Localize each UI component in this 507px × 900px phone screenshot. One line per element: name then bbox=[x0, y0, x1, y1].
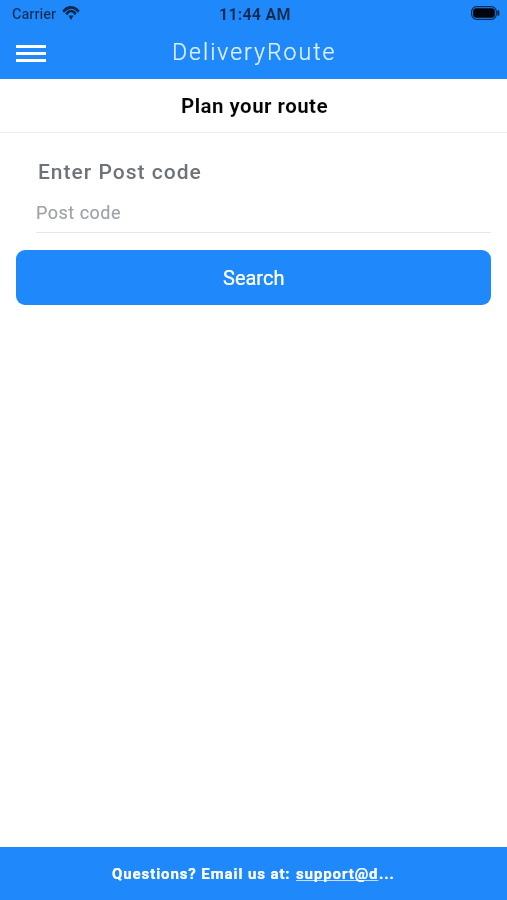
button[interactable]: Questions? Email us at: bbox=[0, 847, 507, 900]
staticText: Enter Post code bbox=[38, 160, 202, 185]
staticText: Post code bbox=[36, 202, 122, 223]
staticText: Carrier bbox=[12, 6, 57, 23]
button[interactable]: Open navigation menu bbox=[5, 27, 57, 79]
button[interactable]: Search bbox=[16, 250, 491, 305]
staticText: Plan your route bbox=[181, 94, 329, 118]
staticText: 11:44 AM bbox=[219, 5, 291, 24]
staticText: DeliveryRoute bbox=[172, 39, 337, 66]
staticText: Search bbox=[223, 266, 285, 289]
staticText: ... bbox=[379, 865, 395, 883]
staticText: support@d bbox=[296, 865, 379, 883]
staticText: Questions? Email us at: bbox=[112, 865, 296, 883]
